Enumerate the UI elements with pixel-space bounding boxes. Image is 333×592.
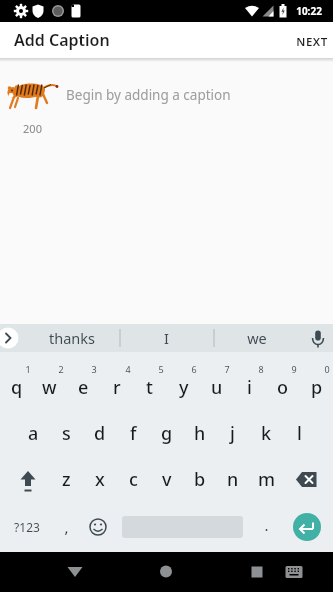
button[interactable]: i xyxy=(233,364,266,410)
button[interactable]: y xyxy=(167,364,200,410)
button[interactable]: d xyxy=(83,410,116,456)
staticText: 10:22 xyxy=(296,4,322,18)
staticText: ?123 xyxy=(14,519,40,535)
button[interactable]: I xyxy=(130,324,202,352)
button[interactable] xyxy=(293,513,321,541)
button[interactable]: b xyxy=(183,456,216,502)
staticText: q xyxy=(11,375,23,400)
button[interactable]: e xyxy=(67,364,100,410)
staticText: e xyxy=(78,375,89,400)
button[interactable] xyxy=(146,557,186,587)
button[interactable]: k xyxy=(250,410,283,456)
staticText: Add Caption xyxy=(14,29,110,51)
button[interactable]: s xyxy=(50,410,83,456)
staticText: 5 xyxy=(158,363,164,375)
staticText: s xyxy=(62,421,71,446)
button[interactable]: f xyxy=(117,410,150,456)
button[interactable]: , xyxy=(51,512,81,542)
button[interactable]: a xyxy=(17,410,50,456)
button[interactable] xyxy=(55,557,95,587)
button[interactable]: g xyxy=(150,410,183,456)
button[interactable]: ?123 xyxy=(4,512,50,542)
staticText: o xyxy=(277,375,288,400)
staticText: x xyxy=(95,467,105,492)
staticText: i xyxy=(247,375,252,400)
staticText: l xyxy=(297,421,302,446)
staticText: b xyxy=(194,467,206,492)
button[interactable]: q xyxy=(0,364,33,410)
button[interactable] xyxy=(0,456,50,502)
staticText: j xyxy=(230,421,235,446)
button[interactable] xyxy=(283,456,333,502)
button[interactable] xyxy=(278,557,312,587)
staticText: h xyxy=(194,421,206,446)
staticText: 1 xyxy=(25,363,31,375)
staticText: I xyxy=(164,328,169,348)
button[interactable]: o xyxy=(266,364,299,410)
staticText: 3 xyxy=(91,363,97,375)
staticText: y xyxy=(179,375,189,400)
button[interactable]: n xyxy=(216,456,249,502)
button[interactable]: r xyxy=(100,364,133,410)
button[interactable]: l xyxy=(283,410,316,456)
button[interactable]: c xyxy=(117,456,150,502)
staticText: 2 xyxy=(58,363,64,375)
button[interactable]: x xyxy=(83,456,116,502)
staticText: u xyxy=(211,375,223,400)
button[interactable]: NEXT xyxy=(287,30,333,54)
staticText: z xyxy=(62,467,71,492)
staticText: r xyxy=(113,375,121,400)
button[interactable]: u xyxy=(200,364,233,410)
button[interactable]: w xyxy=(33,364,66,410)
button[interactable] xyxy=(237,557,277,587)
staticText: 8 xyxy=(258,363,264,375)
button[interactable]: p xyxy=(300,364,333,410)
button[interactable]: v xyxy=(150,456,183,502)
button[interactable]: t xyxy=(133,364,166,410)
staticText: 7 xyxy=(224,363,230,375)
staticText: 9 xyxy=(291,363,297,375)
staticText: t xyxy=(146,375,153,400)
staticText: n xyxy=(227,467,239,492)
staticText: c xyxy=(129,467,138,492)
staticText: a xyxy=(28,421,39,446)
button[interactable]: . xyxy=(251,510,281,540)
staticText: 0 xyxy=(324,363,330,375)
staticText: , xyxy=(64,517,69,537)
button[interactable]: j xyxy=(216,410,249,456)
staticText: g xyxy=(161,421,173,446)
button[interactable]: h xyxy=(183,410,216,456)
staticText: m xyxy=(258,467,276,492)
staticText: . xyxy=(264,515,269,535)
staticText: p xyxy=(311,375,323,400)
button[interactable]: m xyxy=(250,456,283,502)
staticText: NEXT xyxy=(296,34,328,50)
button[interactable] xyxy=(82,512,114,542)
button[interactable]: thanks xyxy=(36,324,108,352)
staticText: k xyxy=(261,421,272,446)
staticText: Begin by adding a caption xyxy=(66,86,231,104)
staticText: we xyxy=(247,328,267,348)
staticText: 4 xyxy=(125,363,131,375)
staticText: d xyxy=(94,421,106,446)
button[interactable]: z xyxy=(50,456,83,502)
staticText: 200 xyxy=(23,121,42,136)
staticText: w xyxy=(42,375,57,400)
staticText: f xyxy=(130,421,137,446)
staticText: v xyxy=(162,467,172,492)
staticText: thanks xyxy=(49,328,95,348)
staticText: 6 xyxy=(191,363,197,375)
button[interactable]: we xyxy=(221,324,293,352)
